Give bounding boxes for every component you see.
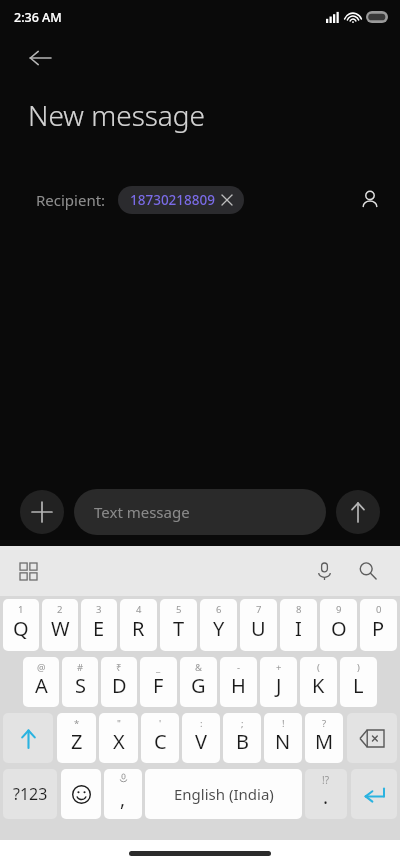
staticText: N: [275, 728, 291, 755]
staticText: O: [331, 615, 347, 642]
button[interactable]: ,: [104, 769, 142, 819]
button[interactable]: (: [300, 657, 337, 707]
staticText: *: [74, 717, 80, 730]
button[interactable]: English (India): [145, 769, 302, 819]
staticText: 6: [216, 603, 222, 616]
button[interactable]: 0: [360, 599, 397, 651]
staticText: 9: [336, 603, 342, 616]
staticText: W: [51, 615, 70, 642]
staticText: V: [195, 728, 207, 755]
button[interactable]: Contacts: [348, 178, 392, 222]
staticText: 1: [18, 603, 24, 616]
button[interactable]: @: [23, 657, 59, 707]
button[interactable]: #: [62, 657, 98, 707]
staticText: ": [117, 717, 121, 730]
staticText: ₹: [116, 661, 122, 674]
staticText: ): [357, 661, 360, 674]
button[interactable]: !?: [305, 769, 347, 819]
button[interactable]: Keyboard options: [8, 551, 48, 591]
staticText: U: [251, 615, 266, 642]
staticText: New message: [28, 96, 206, 134]
button[interactable]: Enter: [351, 769, 397, 819]
staticText: -: [237, 661, 241, 674]
staticText: C: [154, 728, 167, 755]
staticText: Q: [13, 615, 29, 642]
staticText: @: [37, 661, 46, 674]
staticText: ': [159, 717, 162, 730]
button[interactable]: Back: [16, 34, 64, 82]
staticText: ;: [241, 717, 244, 730]
staticText: _: [156, 661, 161, 674]
staticText: Y: [213, 615, 225, 642]
staticText: T: [173, 615, 185, 642]
button[interactable]: ?: [305, 713, 343, 763]
staticText: 8: [296, 603, 302, 616]
staticText: :: [200, 717, 203, 730]
staticText: I: [295, 615, 302, 642]
button[interactable]: -: [220, 657, 257, 707]
staticText: P: [372, 615, 385, 642]
button[interactable]: ': [141, 713, 179, 763]
staticText: Recipient:: [36, 190, 106, 210]
button[interactable]: Backspace: [347, 713, 397, 763]
staticText: A: [35, 672, 48, 699]
staticText: ?123: [13, 783, 48, 805]
staticText: !: [282, 717, 285, 730]
staticText: 5: [176, 603, 182, 616]
button[interactable]: ₹: [101, 657, 137, 707]
staticText: K: [312, 672, 325, 699]
button[interactable]: ": [99, 713, 138, 763]
staticText: ?: [322, 717, 327, 730]
staticText: M: [315, 728, 334, 755]
button[interactable]: _: [140, 657, 177, 707]
staticText: ,: [120, 786, 126, 812]
button[interactable]: :: [182, 713, 220, 763]
staticText: 3: [96, 603, 102, 616]
staticText: +: [276, 661, 282, 674]
staticText: H: [231, 672, 246, 699]
button[interactable]: ?123: [3, 769, 57, 819]
staticText: L: [353, 672, 364, 699]
staticText: 18730218809: [130, 191, 215, 209]
button[interactable]: Shift: [3, 713, 53, 763]
button[interactable]: 4: [120, 599, 157, 651]
staticText: F: [153, 672, 164, 699]
button[interactable]: &: [180, 657, 217, 707]
staticText: 0: [376, 603, 382, 616]
staticText: X: [113, 728, 125, 755]
staticText: English (India): [174, 784, 274, 804]
button[interactable]: !: [264, 713, 302, 763]
button[interactable]: ;: [223, 713, 261, 763]
button[interactable]: 2: [42, 599, 78, 651]
button[interactable]: +: [260, 657, 297, 707]
staticText: B: [236, 728, 249, 755]
staticText: R: [132, 615, 145, 642]
staticText: J: [276, 672, 282, 699]
button[interactable]: 3: [81, 599, 117, 651]
button[interactable]: 6: [200, 599, 237, 651]
button[interactable]: 7: [240, 599, 277, 651]
staticText: #: [77, 661, 84, 674]
staticText: D: [112, 672, 127, 699]
staticText: Text message: [94, 502, 190, 522]
button[interactable]: 1: [3, 599, 39, 651]
button[interactable]: Text message: [74, 489, 326, 535]
button[interactable]: 18730218809: [118, 186, 244, 214]
button[interactable]: ): [340, 657, 377, 707]
button[interactable]: 8: [280, 599, 317, 651]
staticText: &: [195, 661, 202, 674]
staticText: Z: [71, 728, 83, 755]
staticText: G: [191, 672, 206, 699]
staticText: 2:36 AM: [14, 9, 62, 26]
staticText: E: [93, 615, 105, 642]
button[interactable]: Voice input: [304, 551, 344, 591]
staticText: 2: [57, 603, 63, 616]
button[interactable]: Add attachment: [20, 490, 64, 534]
button[interactable]: Emoji: [61, 769, 101, 819]
staticText: !?: [322, 773, 330, 787]
button[interactable]: Send: [336, 490, 380, 534]
button[interactable]: 9: [320, 599, 357, 651]
button[interactable]: *: [57, 713, 96, 763]
button[interactable]: Search: [348, 551, 388, 591]
button[interactable]: 5: [160, 599, 197, 651]
